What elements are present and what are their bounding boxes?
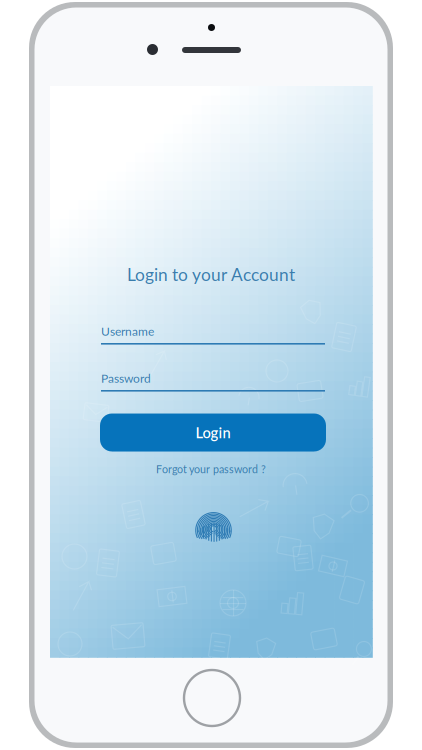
staticText: Username <box>101 324 154 338</box>
button[interactable]: Forgot your password ? <box>50 462 372 476</box>
staticText: Forgot your password ? <box>156 463 266 475</box>
staticText: Password <box>101 371 151 385</box>
staticText: Login <box>195 424 230 441</box>
staticText: Login to your Account <box>127 264 295 285</box>
button[interactable]: Login <box>100 413 326 451</box>
